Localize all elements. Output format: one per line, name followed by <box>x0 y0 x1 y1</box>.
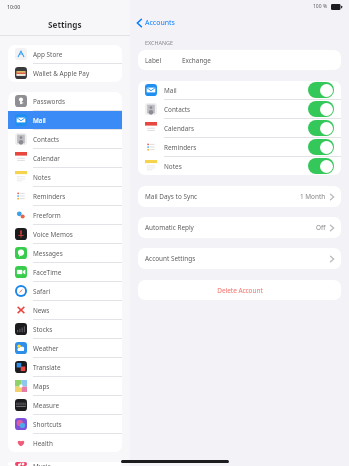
button[interactable]: Passwords <box>8 92 122 110</box>
button[interactable]: Reminders <box>138 138 341 156</box>
staticText: Calendars <box>164 124 195 133</box>
staticText: Translate <box>33 363 61 372</box>
button[interactable]: App Store <box>8 45 122 63</box>
button[interactable]: Shortcuts <box>8 415 122 433</box>
button[interactable]: Account Settings <box>138 248 341 269</box>
staticText: Weather <box>33 344 59 353</box>
button[interactable]: Contacts <box>8 130 122 148</box>
staticText: Messages <box>33 249 63 258</box>
staticText: Automatic Reply <box>145 223 194 232</box>
staticText: Label <box>145 56 162 65</box>
staticText: Reminders <box>33 192 66 201</box>
staticText: Mail <box>33 116 46 125</box>
staticText: Maps <box>33 382 50 391</box>
button[interactable]: Calendars <box>138 119 341 137</box>
staticText: Notes <box>33 173 51 182</box>
button[interactable]: Toggle <box>308 82 334 98</box>
button[interactable]: Delete Account <box>138 280 341 300</box>
staticText: Notes <box>164 162 182 171</box>
staticText: Music <box>33 462 51 466</box>
button[interactable]: Messages <box>8 244 122 262</box>
staticText: 100 % <box>313 3 328 10</box>
staticText: Exchange <box>182 56 211 65</box>
button[interactable]: Maps <box>8 377 122 395</box>
button[interactable]: Voice Memos <box>8 225 122 243</box>
button[interactable]: Stocks <box>8 320 122 338</box>
button[interactable]: Safari <box>8 282 122 300</box>
button[interactable]: Music <box>8 462 122 466</box>
staticText: EXCHANGE <box>145 39 173 46</box>
staticText: Safari <box>33 287 51 296</box>
staticText: News <box>33 306 50 315</box>
button[interactable]: Weather <box>8 339 122 357</box>
staticText: Health <box>33 439 53 448</box>
staticText: 10:00 <box>7 3 21 10</box>
staticText: Wallet & Apple Pay <box>33 69 90 78</box>
staticText: Reminders <box>164 143 197 152</box>
staticText: Accounts <box>145 18 175 28</box>
button[interactable]: Calendar <box>8 149 122 167</box>
staticText: Account Settings <box>145 254 196 263</box>
button[interactable]: Toggle <box>308 139 334 155</box>
staticText: 1 Month <box>300 192 326 201</box>
button[interactable]: Mail Days to Sync <box>138 186 341 207</box>
button[interactable]: Mail <box>138 81 341 99</box>
button[interactable]: FaceTime <box>8 263 122 281</box>
staticText: Delete Account <box>217 286 263 295</box>
staticText: Mail <box>164 86 177 95</box>
staticText: Freeform <box>33 211 61 220</box>
button[interactable]: Toggle <box>308 101 334 117</box>
button[interactable]: Wallet & Apple Pay <box>8 64 122 82</box>
button[interactable]: Back to Accounts <box>130 13 175 33</box>
button[interactable]: Label <box>138 50 341 70</box>
staticText: FaceTime <box>33 268 62 277</box>
button[interactable]: Freeform <box>8 206 122 224</box>
staticText: Calendar <box>33 154 60 163</box>
button[interactable]: Reminders <box>8 187 122 205</box>
button[interactable]: Measure <box>8 396 122 414</box>
staticText: Voice Memos <box>33 230 73 239</box>
staticText: Stocks <box>33 325 53 334</box>
button[interactable]: News <box>8 301 122 319</box>
staticText: Contacts <box>33 135 60 144</box>
button[interactable]: Automatic Reply <box>138 217 341 238</box>
button[interactable]: Translate <box>8 358 122 376</box>
staticText: Measure <box>33 401 60 410</box>
button[interactable]: Health <box>8 434 122 452</box>
staticText: Settings <box>48 19 82 30</box>
staticText: Passwords <box>33 97 65 106</box>
staticText: Contacts <box>164 105 191 114</box>
button[interactable]: Notes <box>8 168 122 186</box>
button[interactable]: Notes <box>138 157 341 175</box>
button[interactable]: Toggle <box>308 158 334 174</box>
staticText: App Store <box>33 50 63 59</box>
button[interactable]: Mail <box>8 111 122 129</box>
staticText: Shortcuts <box>33 420 62 429</box>
staticText: Mail Days to Sync <box>145 192 198 201</box>
button[interactable]: Toggle <box>308 120 334 136</box>
staticText: Off <box>316 223 326 232</box>
button[interactable]: Contacts <box>138 100 341 118</box>
